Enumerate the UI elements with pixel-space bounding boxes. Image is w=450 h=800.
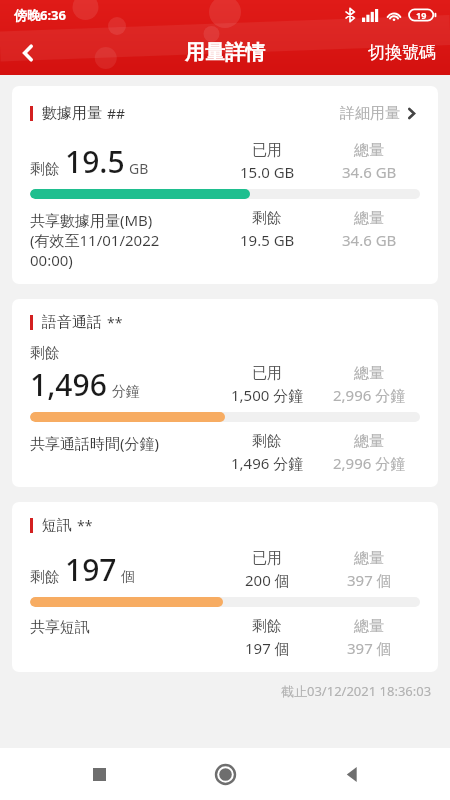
button[interactable]: 詳細用量: [338, 100, 420, 127]
staticText: ##: [107, 104, 126, 123]
staticText: 共享數據用量(MB) (有效至11/01/2022 00:00): [30, 210, 160, 270]
staticText: 已用: [252, 141, 282, 160]
staticText: 19: [416, 9, 427, 21]
button[interactable]: 數據用量: [12, 86, 438, 284]
staticText: 總量: [354, 432, 384, 451]
button[interactable]: Back: [324, 748, 380, 800]
staticText: 用量詳情: [185, 40, 265, 65]
staticText: 語音通話: [42, 313, 102, 332]
staticText: GB: [129, 159, 149, 178]
staticText: 剩餘: [252, 617, 282, 636]
staticText: 19.5: [65, 141, 125, 182]
staticText: 總量: [354, 617, 384, 636]
button[interactable]: Back: [6, 31, 50, 75]
staticText: 34.6 GB: [342, 162, 397, 182]
staticText: 總量: [354, 364, 384, 383]
staticText: 總量: [354, 209, 384, 228]
staticText: 分鐘: [112, 383, 140, 401]
staticText: 已用: [252, 549, 282, 568]
staticText: 19.5 GB: [240, 230, 295, 250]
staticText: 1,496: [30, 364, 107, 405]
staticText: 197 個: [245, 638, 290, 658]
staticText: 個: [121, 568, 135, 586]
staticText: 剩餘: [30, 160, 60, 179]
staticText: 傍晚6:36: [14, 6, 66, 24]
staticText: 剩餘: [252, 209, 282, 228]
staticText: 2,996 分鐘: [333, 385, 406, 405]
staticText: 15.0 GB: [240, 162, 295, 182]
staticText: 397 個: [347, 570, 392, 590]
staticText: 詳細用量: [340, 104, 400, 123]
staticText: 總量: [354, 549, 384, 568]
staticText: 1,496 分鐘: [231, 453, 304, 473]
button[interactable]: 語音通話: [12, 299, 438, 487]
staticText: 共享通話時間(分鐘): [30, 433, 160, 453]
button[interactable]: Recents: [71, 748, 127, 800]
staticText: 共享短訊: [30, 618, 90, 637]
staticText: 剩餘: [252, 432, 282, 451]
staticText: 總量: [354, 141, 384, 160]
button[interactable]: 切換號碼: [354, 34, 450, 71]
staticText: 切換號碼: [368, 42, 436, 63]
button[interactable]: Home: [197, 748, 253, 800]
staticText: 剩餘: [30, 344, 60, 363]
staticText: 截止03/12/2021 18:36:03: [281, 682, 432, 700]
staticText: **: [107, 313, 123, 332]
staticText: 197: [65, 549, 117, 590]
button[interactable]: 短訊: [12, 502, 438, 672]
staticText: 已用: [252, 364, 282, 383]
staticText: 34.6 GB: [342, 230, 397, 250]
staticText: 1,500 分鐘: [231, 385, 304, 405]
staticText: 397 個: [347, 638, 392, 658]
staticText: 200 個: [245, 570, 290, 590]
staticText: 2,996 分鐘: [333, 453, 406, 473]
staticText: 剩餘: [30, 568, 60, 587]
staticText: 短訊: [42, 516, 72, 535]
staticText: 數據用量: [42, 104, 102, 123]
staticText: **: [77, 516, 93, 535]
